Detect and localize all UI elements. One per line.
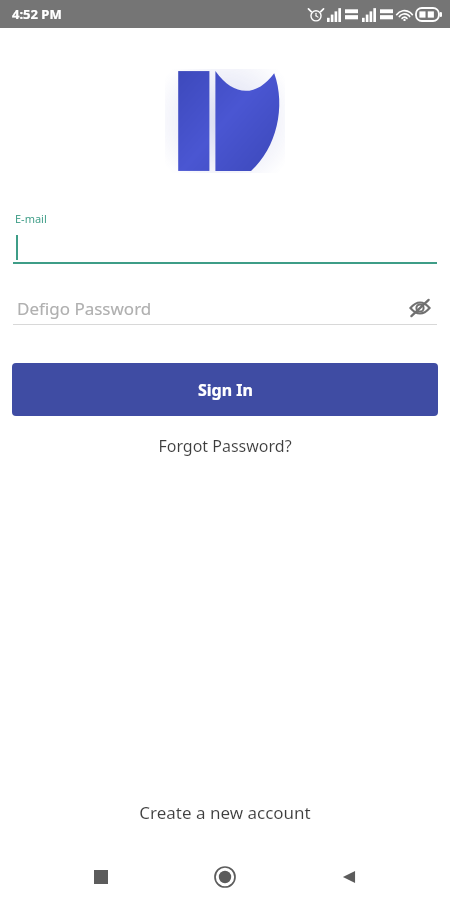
button[interactable]: Show password	[403, 292, 437, 324]
button[interactable]: Back	[326, 854, 372, 900]
staticText: Sign In	[198, 379, 253, 401]
staticText: 4:52 PM	[12, 5, 62, 23]
staticText: Defigo Password	[17, 297, 403, 320]
button[interactable]: Create a new account	[123, 793, 327, 832]
staticText: E-mail	[15, 211, 47, 226]
button[interactable]: Forgot Password?	[142, 429, 308, 463]
button[interactable]: E-mail	[13, 211, 437, 264]
button[interactable]: Recents	[78, 854, 124, 900]
staticText: Create a new account	[139, 801, 311, 824]
button[interactable]: Home	[202, 854, 248, 900]
button[interactable]: Defigo Password	[13, 292, 437, 325]
button[interactable]: Sign In	[12, 363, 438, 416]
staticText: Forgot Password?	[158, 435, 292, 457]
